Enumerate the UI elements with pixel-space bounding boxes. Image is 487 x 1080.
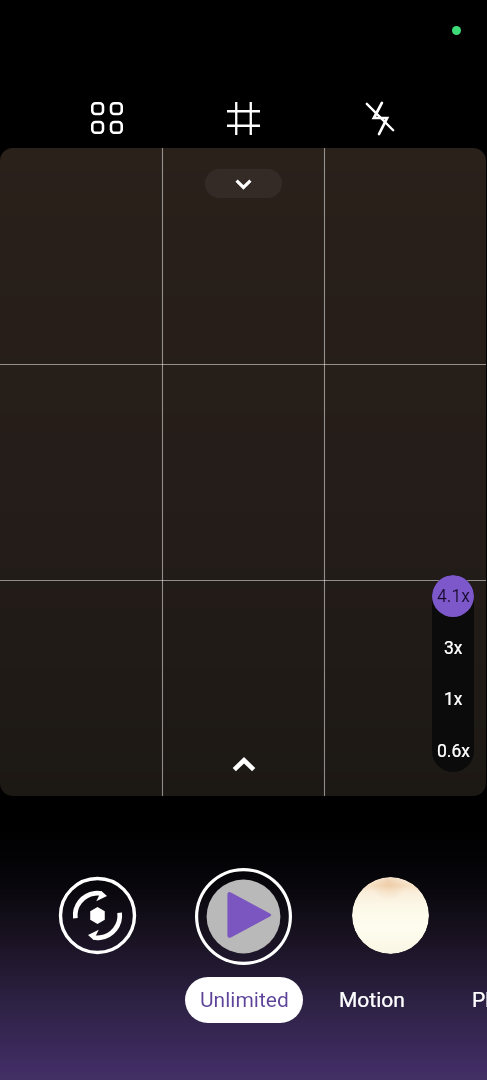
staticText: 0.6x <box>437 741 470 762</box>
staticText: Photo <box>472 988 487 1013</box>
staticText: 1x <box>444 689 463 710</box>
button[interactable]: Show camera settings <box>205 169 282 198</box>
button[interactable]: 1x <box>432 678 474 720</box>
button[interactable]: 3x <box>432 627 474 669</box>
button[interactable]: 4.1x <box>432 575 474 617</box>
staticText: 4.1x <box>437 586 470 607</box>
button[interactable]: Record video <box>195 868 292 965</box>
staticText: Motion <box>339 988 405 1013</box>
button[interactable]: Unlimited <box>185 977 303 1023</box>
button[interactable]: Switch camera <box>58 876 137 955</box>
staticText: Unlimited <box>200 988 289 1013</box>
button[interactable]: Flash off <box>356 94 404 142</box>
button[interactable]: Photo <box>458 977 487 1023</box>
button[interactable]: Camera modes <box>83 94 131 142</box>
button[interactable]: More camera options <box>220 741 268 789</box>
button[interactable]: Motion <box>325 977 419 1023</box>
button[interactable]: Open gallery <box>352 877 429 954</box>
button[interactable]: 0.6x <box>432 730 474 772</box>
button[interactable]: Grid lines <box>219 94 267 142</box>
staticText: 3x <box>444 638 463 659</box>
